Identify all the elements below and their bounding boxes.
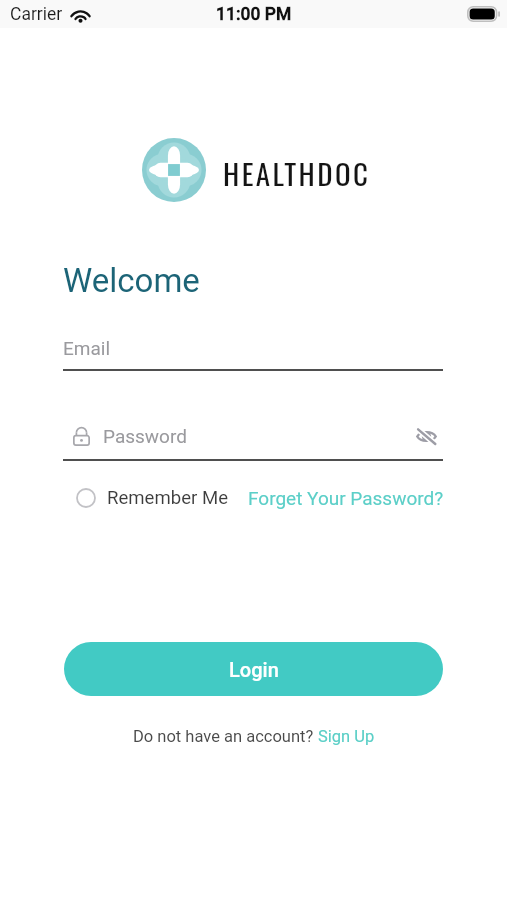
staticText: Remember Me <box>107 487 229 509</box>
staticText: Password <box>103 425 187 447</box>
staticText: 11:00 PM <box>216 4 292 25</box>
staticText: HEALTHDOC <box>223 151 371 194</box>
button[interactable]: Login <box>64 642 443 696</box>
staticText: Do not have an account? <box>133 727 318 746</box>
staticText: Welcome <box>63 261 200 300</box>
button[interactable]: Remember Me <box>63 487 229 509</box>
button[interactable]: Password <box>63 424 443 461</box>
button[interactable]: Sign Up <box>318 727 375 746</box>
button[interactable]: Forget Your Password? <box>248 487 444 509</box>
button[interactable]: Email <box>63 337 443 371</box>
staticText: Email <box>63 337 111 359</box>
other: Show password <box>416 428 437 445</box>
staticText: Login <box>229 658 279 681</box>
staticText: Carrier <box>10 4 63 25</box>
